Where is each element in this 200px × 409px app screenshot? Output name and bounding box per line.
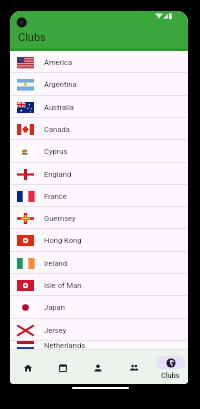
staticText: Cyprus: [44, 147, 68, 156]
button[interactable]: America: [10, 51, 188, 73]
button[interactable]: Ireland: [10, 252, 188, 274]
button[interactable]: Members: [116, 350, 152, 384]
staticText: Isle of Man: [44, 281, 82, 290]
button[interactable]: Calendar: [45, 350, 80, 384]
button[interactable]: Jersey: [10, 319, 188, 341]
button[interactable]: England: [10, 163, 188, 185]
button[interactable]: Hong Kong: [10, 229, 188, 252]
staticText: Argentina: [44, 80, 77, 89]
button[interactable]: Isle of Man: [10, 274, 188, 296]
staticText: Hong Kong: [44, 236, 82, 245]
button[interactable]: Japan: [10, 296, 188, 319]
staticText: Japan: [44, 303, 65, 312]
button[interactable]: Australia: [10, 96, 188, 118]
button[interactable]: Cyprus: [10, 140, 188, 163]
button[interactable]: Canada: [10, 118, 188, 140]
button[interactable]: Clubs: [152, 350, 188, 384]
staticText: Canada: [44, 125, 70, 134]
staticText: France: [44, 192, 67, 201]
staticText: Jersey: [44, 326, 67, 335]
staticText: England: [44, 170, 72, 179]
staticText: Australia: [44, 103, 74, 112]
button[interactable]: Netherlands: [10, 341, 188, 350]
staticText: Netherlands: [44, 341, 86, 350]
staticText: Guernsey: [44, 214, 76, 223]
button[interactable]: Profile: [80, 350, 116, 384]
button[interactable]: France: [10, 185, 188, 207]
staticText: Ireland: [44, 259, 68, 268]
button[interactable]: Home: [10, 350, 45, 384]
staticText: Clubs: [18, 31, 46, 44]
button[interactable]: Guernsey: [10, 207, 188, 229]
button[interactable]: Argentina: [10, 73, 188, 96]
staticText: America: [44, 58, 73, 67]
staticText: Clubs: [161, 371, 180, 380]
